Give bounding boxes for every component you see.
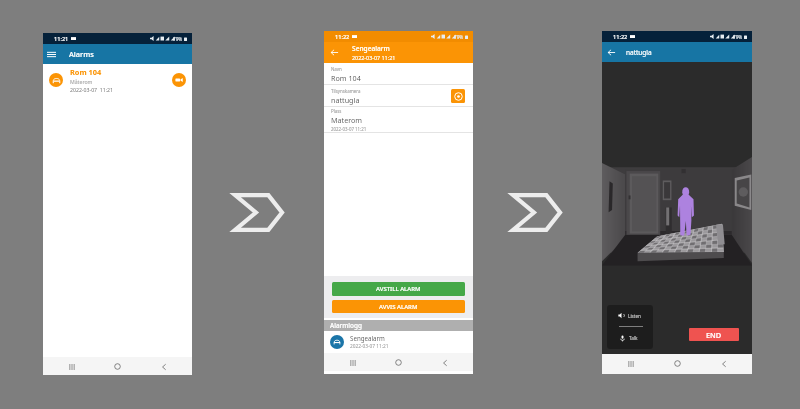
staticText: Rom 104 bbox=[331, 73, 361, 83]
staticText: 2022-03-07 11:21 bbox=[70, 86, 114, 93]
staticText: Tilsynskamera bbox=[331, 88, 361, 94]
staticText: 79% bbox=[173, 36, 183, 42]
button[interactable]: Home bbox=[111, 360, 124, 373]
staticText: 79% bbox=[454, 34, 464, 40]
staticText: Listen bbox=[628, 313, 641, 319]
button[interactable]: Back bbox=[324, 42, 344, 63]
staticText: Talk bbox=[629, 335, 638, 341]
button[interactable]: Recent apps bbox=[346, 356, 359, 369]
button[interactable]: Recent apps bbox=[65, 360, 78, 373]
button[interactable]: Back bbox=[438, 356, 451, 369]
staticText: Sengealarm bbox=[352, 44, 390, 53]
staticText: 11:22 bbox=[335, 33, 350, 41]
staticText: Rom 104 bbox=[70, 67, 102, 77]
button[interactable]: AVSTILL ALARM bbox=[332, 282, 465, 296]
staticText: Sengealarm bbox=[350, 334, 385, 342]
button[interactable]: Recent apps bbox=[624, 357, 637, 370]
button[interactable]: Back bbox=[324, 42, 473, 63]
staticText: 2022-03-07 11:21 bbox=[352, 54, 396, 61]
button[interactable]: Open camera bbox=[451, 89, 465, 103]
button[interactable]: Talk bbox=[607, 327, 653, 349]
button[interactable]: Listen bbox=[607, 305, 653, 326]
staticText: AVSTILL ALARM bbox=[376, 285, 421, 293]
button[interactable]: AVVIS ALARM bbox=[332, 300, 465, 313]
staticText: nattugla bbox=[626, 48, 652, 57]
button[interactable]: Back bbox=[157, 360, 170, 373]
staticText: 2022-03-07 11:21 bbox=[331, 126, 367, 132]
staticText: Alarms bbox=[69, 49, 94, 59]
staticText: END bbox=[706, 330, 722, 340]
staticText: Måterom bbox=[70, 78, 93, 85]
button[interactable]: Rom 104 bbox=[43, 64, 192, 96]
button[interactable]: Menu bbox=[43, 44, 59, 64]
staticText: Alarmlogg bbox=[330, 321, 362, 330]
button[interactable]: Sengealarm bbox=[324, 331, 473, 353]
button[interactable]: Back bbox=[602, 42, 620, 62]
button[interactable]: END bbox=[689, 328, 739, 341]
staticText: Plass bbox=[331, 108, 342, 114]
staticText: nattugla bbox=[331, 95, 360, 105]
staticText: 79% bbox=[733, 34, 743, 40]
staticText: Materom bbox=[331, 115, 363, 125]
staticText: 11:22 bbox=[613, 33, 628, 41]
staticText: AVVIS ALARM bbox=[379, 303, 418, 311]
button[interactable]: View camera bbox=[172, 73, 186, 87]
staticText: 11:21 bbox=[54, 35, 69, 43]
button[interactable]: Back bbox=[602, 42, 752, 62]
button[interactable]: Back bbox=[717, 357, 730, 370]
button[interactable]: Home bbox=[392, 356, 405, 369]
staticText: 2022-03-07 11:21 bbox=[350, 343, 389, 350]
button[interactable]: Home bbox=[671, 357, 684, 370]
staticText: Navn bbox=[331, 66, 342, 72]
button[interactable]: Menu bbox=[43, 44, 192, 64]
